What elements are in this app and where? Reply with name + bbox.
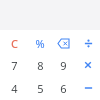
button[interactable]: Subtract — [78, 78, 98, 98]
button[interactable]: 6 — [53, 78, 73, 98]
staticText: 8 — [37, 58, 44, 73]
button[interactable]: C — [4, 33, 24, 53]
staticText: C — [11, 36, 18, 51]
staticText: % — [35, 36, 45, 51]
button[interactable]: 4 — [4, 78, 24, 98]
button[interactable]: 9 — [53, 55, 73, 75]
button[interactable]: 7 — [4, 55, 24, 75]
staticText: 7 — [11, 58, 18, 73]
button[interactable]: 8 — [30, 55, 50, 75]
button[interactable]: Multiply — [78, 55, 98, 75]
button[interactable]: Backspace — [53, 33, 73, 53]
staticText: 9 — [60, 58, 67, 73]
staticText: 4 — [11, 81, 18, 96]
staticText: 5 — [37, 81, 44, 96]
button[interactable]: Divide — [78, 33, 98, 53]
button[interactable]: % — [30, 33, 50, 53]
button[interactable]: 5 — [30, 78, 50, 98]
staticText: 6 — [60, 81, 67, 96]
